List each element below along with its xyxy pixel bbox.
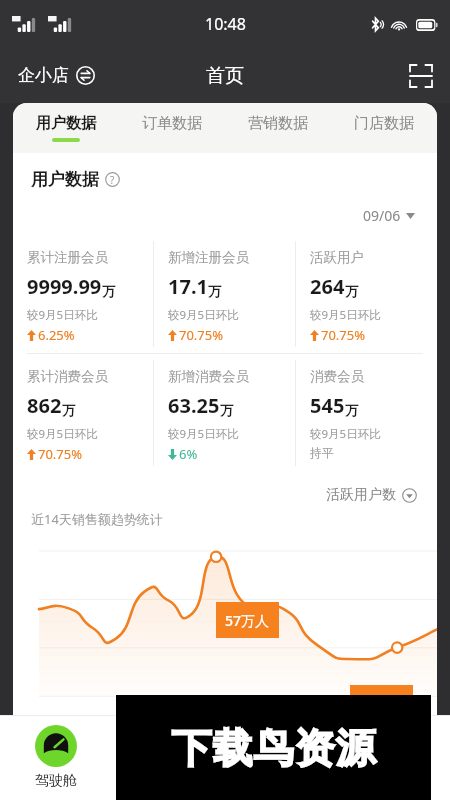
button[interactable]: 消费会员	[296, 354, 437, 472]
staticText: 下载鸟资源	[171, 723, 376, 773]
staticText: 63.25	[168, 392, 220, 419]
staticText: 264	[310, 273, 345, 300]
staticText: 70.75%	[321, 326, 366, 344]
staticText: 545	[310, 392, 345, 419]
button[interactable]: 活跃用户数	[322, 482, 421, 508]
staticText: 首页	[206, 64, 244, 88]
button[interactable]: 活跃用户	[296, 235, 437, 353]
staticText: 较9月5日环比	[310, 307, 381, 323]
staticText: 近14天销售额趋势统计	[31, 510, 163, 528]
staticText: 营销数据	[248, 114, 308, 133]
staticText: 较9月5日环比	[168, 307, 239, 323]
staticText: 17.1	[168, 273, 208, 300]
staticText: 消费会员	[310, 368, 364, 385]
staticText: 用户数据	[36, 114, 96, 133]
staticText: 较9月5日环比	[168, 426, 239, 442]
staticText: 新增消费会员	[168, 368, 249, 385]
staticText: 6.25%	[38, 326, 75, 344]
staticText: 活跃用户	[310, 249, 364, 266]
staticText: 较9月5日环比	[27, 307, 98, 323]
staticText: 订单数据	[142, 114, 202, 133]
button[interactable]: 09/06	[359, 202, 419, 229]
staticText: 10:48	[205, 13, 246, 35]
staticText: 门店数据	[354, 114, 414, 133]
button[interactable]: 新增消费会员	[154, 354, 295, 472]
staticText: 万	[220, 402, 233, 418]
staticText: 累计消费会员	[27, 368, 108, 385]
staticText: 9999.99	[27, 273, 102, 300]
button[interactable]: 新增注册会员	[154, 235, 295, 353]
staticText: 万	[345, 283, 358, 299]
staticText: 70.75%	[179, 326, 224, 344]
staticText: 6%	[179, 445, 198, 463]
button[interactable]: 门店数据	[331, 103, 437, 153]
button[interactable]: 订单数据	[119, 103, 225, 153]
button[interactable]: 累计注册会员	[13, 235, 153, 353]
staticText: 较9月5日环比	[310, 426, 381, 442]
staticText: 万	[102, 283, 115, 299]
button[interactable]: Scan QR code	[404, 59, 438, 93]
staticText: 驾驶舱	[35, 772, 77, 790]
staticText: 较9月5日环比	[27, 426, 98, 442]
button[interactable]: 企小店	[14, 61, 99, 90]
staticText: 用户数据	[31, 169, 99, 190]
staticText: 万	[208, 283, 221, 299]
staticText: 70.75%	[38, 445, 83, 463]
button[interactable]: 用户数据	[13, 103, 119, 153]
button[interactable]: Help	[105, 172, 120, 187]
staticText: 41万人	[359, 694, 404, 713]
staticText: 57万人	[225, 611, 270, 630]
button[interactable]: 营销数据	[225, 103, 331, 153]
staticText: 持平	[310, 445, 334, 460]
staticText: 企小店	[18, 65, 69, 86]
staticText: 万	[62, 402, 75, 418]
staticText: 活跃用户数	[326, 486, 396, 504]
staticText: 新增注册会员	[168, 249, 249, 266]
button[interactable]: 驾驶舱	[0, 715, 112, 800]
button[interactable]: 累计消费会员	[13, 354, 153, 472]
staticText: 862	[27, 392, 62, 419]
staticText: 万	[345, 402, 358, 418]
staticText: 09/06	[363, 206, 401, 225]
staticText: 累计注册会员	[27, 249, 108, 266]
staticText: ?	[110, 173, 115, 187]
